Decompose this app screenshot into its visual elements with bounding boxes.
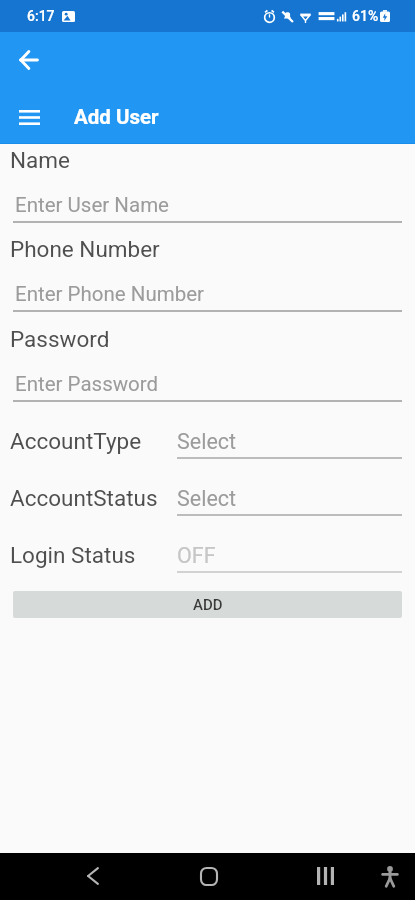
button[interactable]: Recent apps [303, 854, 347, 898]
staticText: Enter User Name [15, 193, 169, 217]
staticText: OFF [177, 543, 216, 568]
staticText: Select [177, 486, 237, 511]
button[interactable]: Accessibility [368, 854, 412, 898]
staticText: Enter Password [15, 372, 159, 396]
staticText: Login Status [10, 542, 136, 568]
button[interactable]: Phone Number [0, 236, 415, 326]
staticText: 61% [352, 8, 379, 24]
button[interactable]: ADD [13, 591, 402, 618]
button[interactable]: Home [187, 854, 231, 898]
button[interactable]: AccountStatus [0, 484, 415, 541]
staticText: AccountType [10, 428, 142, 454]
button[interactable]: AccountType [0, 427, 415, 484]
button[interactable]: Open navigation menu [7, 95, 51, 139]
button[interactable]: Login Status [0, 541, 415, 598]
staticText: AccountStatus [10, 485, 158, 511]
button[interactable]: Name [0, 147, 415, 237]
button[interactable]: Navigate up [10, 42, 46, 78]
button[interactable]: Back [71, 854, 115, 898]
staticText: Phone Number [10, 236, 160, 262]
staticText: ADD [193, 596, 223, 614]
staticText: Name [10, 147, 70, 173]
staticText: 6:17 [27, 8, 55, 24]
staticText: Select [177, 429, 237, 454]
staticText: Add User [74, 105, 159, 129]
button[interactable]: Password [0, 326, 415, 416]
staticText: Enter Phone Number [15, 282, 205, 306]
staticText: Password [10, 326, 110, 352]
